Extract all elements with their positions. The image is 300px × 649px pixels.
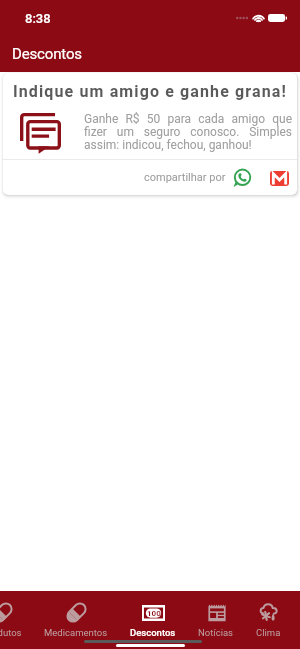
staticText: Produtos [0, 627, 22, 638]
staticText: Medicamentos [44, 627, 108, 638]
button[interactable]: Notícias [187, 591, 245, 649]
staticText: compartilhar por [144, 171, 226, 184]
staticText: 8:38 [25, 11, 51, 26]
staticText: Descontos [12, 45, 82, 63]
staticText: Notícias [198, 627, 234, 638]
staticText: Descontos [130, 627, 176, 638]
button[interactable]: Compartilhar por WhatsApp [232, 168, 252, 188]
button[interactable]: Compartilhar por Gmail [269, 168, 289, 188]
button[interactable]: Medicamentos [33, 591, 119, 649]
button[interactable]: 100 [119, 591, 187, 649]
button[interactable]: Produtos [0, 591, 33, 649]
staticText: Ganhe R$ 50 para cada amigo que fizer um… [84, 112, 292, 152]
button[interactable]: Clima [245, 591, 292, 649]
staticText: 100 [147, 609, 161, 618]
staticText: Clima [256, 627, 281, 638]
staticText: Indique um amigo e ganhe grana! [3, 82, 297, 101]
